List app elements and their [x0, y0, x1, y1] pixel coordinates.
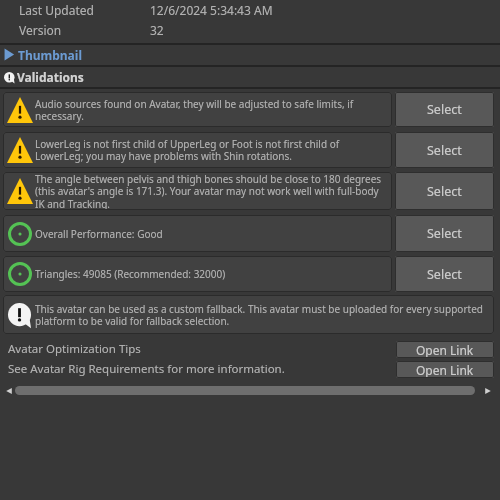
button[interactable]: Select [395, 256, 494, 292]
staticText: Open Link [416, 362, 474, 378]
staticText: Validations [17, 69, 84, 85]
staticText: Select [427, 183, 462, 200]
staticText: LowerLeg is not first child of UpperLeg … [35, 137, 340, 163]
button[interactable]: Audio sources found on Avatar, they will… [3, 92, 392, 127]
staticText: Last Updated [19, 2, 94, 18]
staticText: Audio sources found on Avatar, they will… [35, 97, 354, 123]
staticText: See Avatar Rig Requirements for more inf… [8, 361, 285, 377]
other: Scroll right [484, 387, 492, 395]
button[interactable]: Select [395, 132, 494, 168]
button[interactable]: The angle between pelvis and thigh bones… [3, 172, 392, 210]
staticText: Version [19, 22, 62, 38]
staticText: Overall Performance: Good [35, 227, 163, 241]
button[interactable]: This avatar can be used as a custom fall… [3, 295, 494, 334]
button[interactable]: Open Link [396, 361, 494, 378]
staticText: Select [427, 142, 462, 159]
button[interactable]: Select [395, 92, 494, 127]
button[interactable]: Open Link [396, 341, 494, 358]
staticText: 12/6/2024 5:34:43 AM [150, 2, 273, 18]
button[interactable]: Thumbnail [0, 45, 500, 65]
button[interactable]: Triangles: 49085 (Recommended: 32000) [3, 256, 392, 292]
staticText: Triangles: 49085 (Recommended: 32000) [35, 267, 226, 281]
staticText: 32 [150, 22, 164, 38]
staticText: Select [427, 266, 462, 283]
other: Scroll left [5, 387, 13, 395]
staticText: The angle between pelvis and thigh bones… [35, 172, 382, 210]
staticText: Thumbnail [18, 47, 82, 63]
staticText: Open Link [416, 342, 474, 358]
button[interactable]: Select [395, 215, 494, 252]
staticText: Select [427, 225, 462, 242]
staticText: Avatar Optimization Tips [8, 341, 141, 357]
button[interactable]: LowerLeg is not first child of UpperLeg … [3, 132, 392, 168]
staticText: This avatar can be used as a custom fall… [35, 302, 483, 328]
button[interactable]: Select [395, 172, 494, 210]
button[interactable] [15, 386, 475, 395]
staticText: Select [427, 101, 462, 118]
button[interactable]: Overall Performance: Good [3, 215, 392, 252]
